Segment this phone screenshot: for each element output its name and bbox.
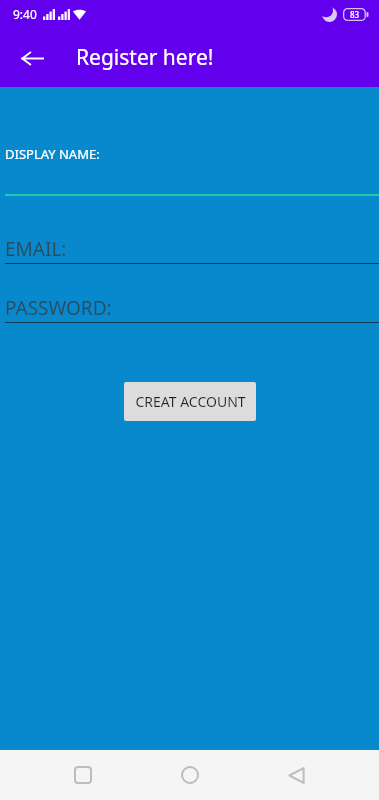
staticText: PASSWORD: (5, 295, 112, 321)
staticText: EMAIL: (5, 236, 67, 262)
button[interactable]: Back (272, 751, 320, 799)
staticText: CREAT ACCOUNT (135, 392, 246, 411)
staticText: Register here! (76, 43, 214, 72)
button[interactable]: Recent apps (59, 751, 107, 799)
button[interactable]: Back (10, 36, 54, 80)
button[interactable]: Home (166, 751, 214, 799)
button[interactable]: CREAT ACCOUNT (124, 382, 256, 421)
staticText: DISPLAY NAME: (5, 145, 100, 163)
staticText: 83 (350, 9, 360, 20)
staticText: 9:40 (13, 6, 37, 22)
